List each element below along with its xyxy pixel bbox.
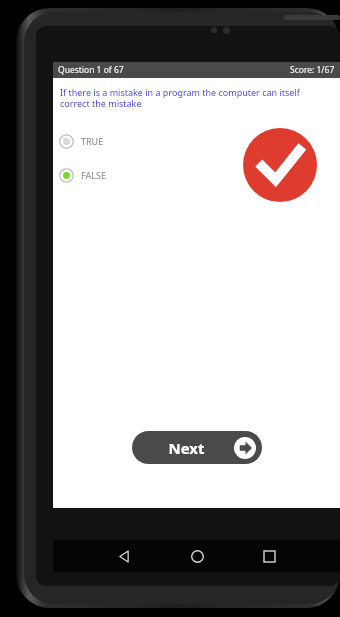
staticText: Question 1 of 67: [58, 64, 124, 76]
other: Correct: [243, 128, 317, 202]
button[interactable]: Recent apps: [253, 540, 285, 572]
staticText: Score: 1/67: [290, 64, 335, 76]
button[interactable]: Back: [108, 540, 140, 572]
staticText: If there is a mistake in a program the c…: [60, 86, 330, 110]
button[interactable]: Next: [132, 431, 262, 464]
staticText: FALSE: [81, 169, 106, 181]
button[interactable]: FALSE: [59, 162, 169, 188]
staticText: Next: [168, 438, 205, 458]
button[interactable]: Home: [181, 540, 213, 572]
staticText: TRUE: [81, 135, 104, 147]
button[interactable]: TRUE: [59, 128, 169, 154]
